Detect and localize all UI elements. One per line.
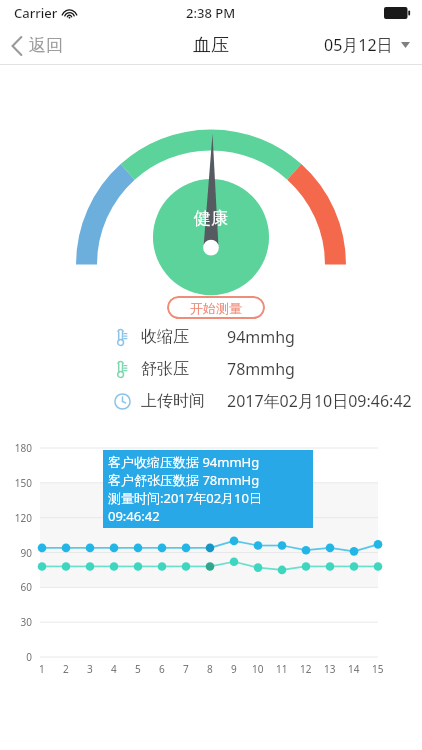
staticText: 上传时间 xyxy=(141,391,205,411)
staticText: 150 xyxy=(14,476,32,490)
staticText: 1 xyxy=(39,662,45,676)
staticText: 9 xyxy=(231,662,237,676)
staticText: 11 xyxy=(276,662,288,676)
staticText: 血压 xyxy=(193,34,229,57)
staticText: 客户收缩压数据 94mmHg xyxy=(108,453,260,471)
button[interactable]: 返回 xyxy=(0,29,75,62)
staticText: 7 xyxy=(183,662,189,676)
staticText: 94mmhg xyxy=(227,326,295,348)
staticText: 2017年02月10日09:46:42 xyxy=(227,390,412,412)
staticText: 健康 xyxy=(194,208,228,229)
staticText: 90 xyxy=(20,546,32,560)
staticText: 78mmhg xyxy=(227,358,295,380)
staticText: 12 xyxy=(300,662,312,676)
staticText: 15 xyxy=(372,662,384,676)
staticText: 测量时间:2017年02月10日 xyxy=(108,489,262,507)
staticText: Carrier xyxy=(14,4,58,22)
staticText: 10 xyxy=(252,662,264,676)
staticText: 4 xyxy=(111,662,117,676)
staticText: 0 xyxy=(26,650,32,664)
staticText: 收缩压 xyxy=(141,327,189,347)
staticText: 120 xyxy=(14,511,32,525)
staticText: 13 xyxy=(324,662,336,676)
staticText: 3 xyxy=(87,662,93,676)
staticText: 05月12日 xyxy=(324,34,393,56)
staticText: 开始测量 xyxy=(190,300,242,316)
staticText: 6 xyxy=(159,662,165,676)
staticText: 返回 xyxy=(29,35,63,56)
staticText: 14 xyxy=(348,662,360,676)
staticText: 5 xyxy=(135,662,141,676)
staticText: 客户舒张压数据 78mmHg xyxy=(108,471,260,489)
staticText: 舒张压 xyxy=(141,359,189,379)
staticText: 8 xyxy=(207,662,213,676)
button[interactable]: 开始测量 xyxy=(167,296,265,319)
staticText: 09:46:42 xyxy=(108,507,160,525)
button[interactable]: 05月12日 xyxy=(314,28,422,62)
staticText: 180 xyxy=(14,441,32,455)
staticText: 2:38 PM xyxy=(186,4,236,22)
staticText: 60 xyxy=(20,580,32,594)
staticText: 2 xyxy=(63,662,69,676)
staticText: 30 xyxy=(20,615,32,629)
